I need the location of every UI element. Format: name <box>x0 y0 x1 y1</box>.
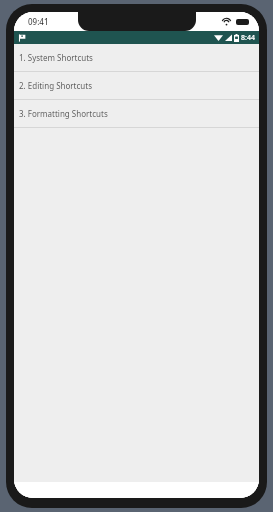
staticText: 8:44 <box>241 33 255 43</box>
staticText: 2. Editing Shortcuts <box>19 80 92 91</box>
button[interactable]: 1. System Shortcuts <box>14 44 259 71</box>
staticText: 09:41 <box>28 16 49 27</box>
staticText: 3. Formatting Shortcuts <box>19 108 108 119</box>
staticText: 1. System Shortcuts <box>19 52 93 63</box>
button[interactable]: 2. Editing Shortcuts <box>14 72 259 99</box>
button[interactable]: 3. Formatting Shortcuts <box>14 100 259 127</box>
